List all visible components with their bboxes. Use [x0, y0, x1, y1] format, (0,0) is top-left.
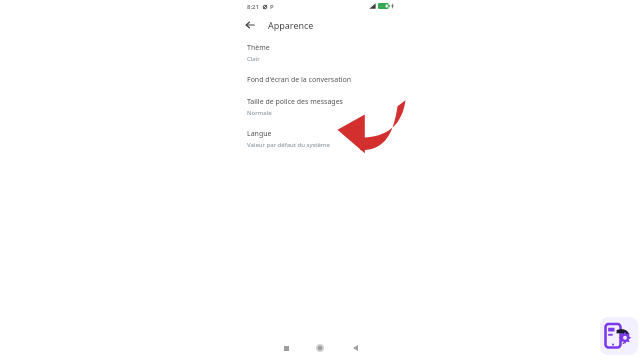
- staticText: P: [270, 3, 274, 11]
- staticText: 8:21: [247, 3, 259, 11]
- button[interactable]: Langue: [247, 128, 407, 150]
- staticText: Thème: [247, 43, 270, 53]
- button[interactable]: Fond d'écran de la conversation: [247, 74, 407, 86]
- button[interactable]: Taille de police des messages: [247, 96, 407, 118]
- button[interactable]: Recent apps: [279, 341, 293, 355]
- staticText: Clair: [247, 55, 260, 63]
- staticText: Taille de police des messages: [247, 97, 343, 107]
- staticText: Valeur par défaut du système: [247, 141, 330, 149]
- button[interactable]: Back: [348, 341, 362, 355]
- button[interactable]: Device settings: [600, 317, 638, 355]
- staticText: Apparence: [268, 19, 314, 31]
- button[interactable]: Home: [313, 341, 327, 355]
- staticText: Langue: [247, 129, 272, 139]
- staticText: Fond d'écran de la conversation: [247, 75, 352, 85]
- button[interactable]: Thème: [247, 42, 407, 64]
- button[interactable]: Back: [241, 16, 259, 34]
- staticText: Normale: [247, 109, 272, 117]
